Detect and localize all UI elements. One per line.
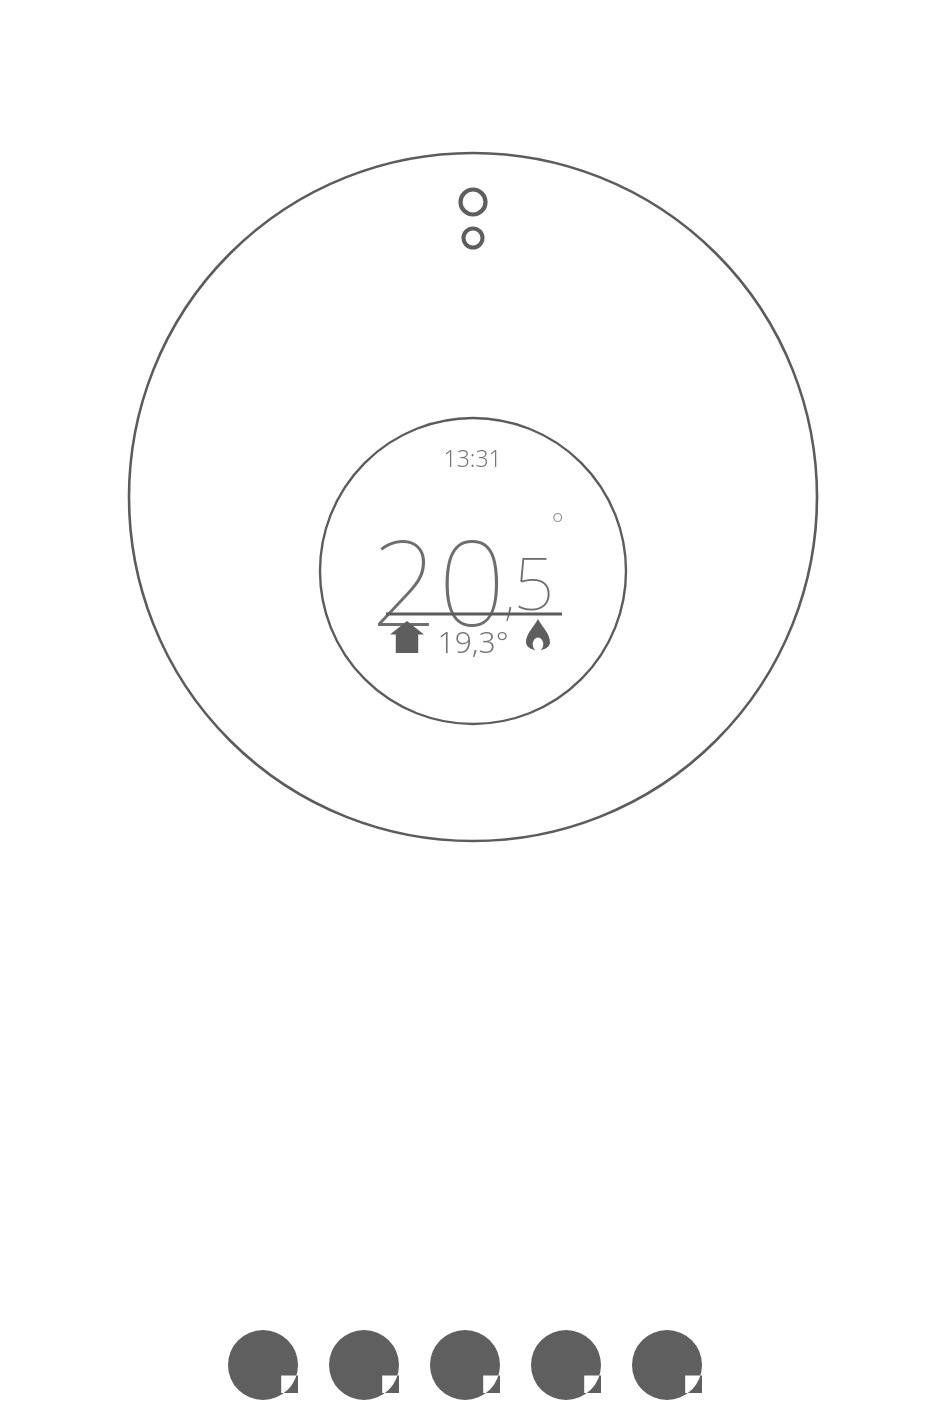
button[interactable]: Thermostat dial, 20,5 degrees	[0, 0, 950, 1407]
